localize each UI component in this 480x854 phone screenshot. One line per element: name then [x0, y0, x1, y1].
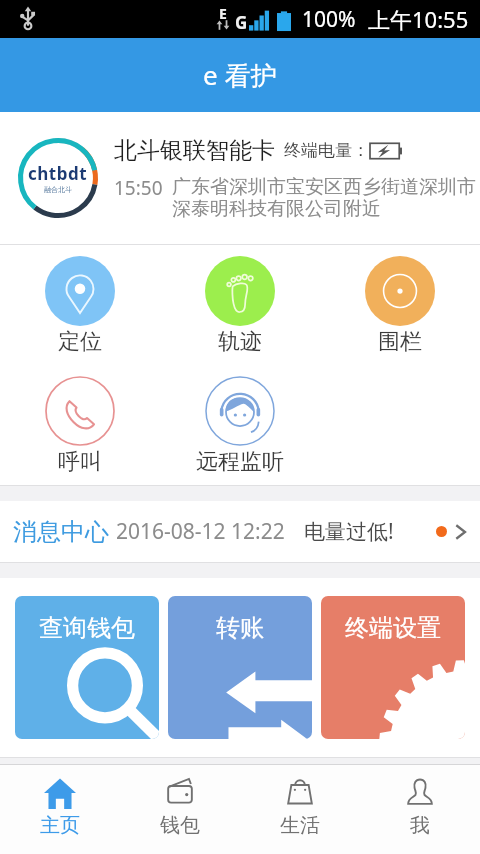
other: USB connected: [20, 6, 36, 30]
other: Open messages: [453, 520, 468, 544]
button[interactable]: 我: [360, 765, 480, 854]
staticText: 消息中心: [13, 517, 109, 547]
staticText: 钱包: [160, 813, 200, 838]
staticText: E: [219, 4, 227, 23]
button[interactable]: 转账: [168, 596, 312, 739]
button[interactable]: 钱包: [120, 765, 240, 854]
staticText: 100%: [302, 5, 356, 34]
staticText: 15:50: [114, 175, 163, 201]
staticText: 电量过低!: [304, 517, 394, 546]
staticText: 我: [410, 813, 430, 838]
staticText: 远程监听: [196, 448, 284, 476]
button[interactable]: 围栏: [320, 245, 480, 365]
staticText: 终端电量：: [284, 140, 369, 161]
staticText: 上午10:55: [368, 4, 469, 34]
button[interactable]: 消息中心: [0, 501, 480, 562]
button[interactable]: 主页: [0, 765, 120, 854]
staticText: 围栏: [378, 328, 422, 356]
button[interactable]: chtbdt: [0, 112, 480, 244]
staticText: chtbdt: [28, 162, 88, 185]
button[interactable]: 远程监听: [160, 365, 320, 485]
button[interactable]: 轨迹: [160, 245, 320, 365]
staticText: 融合北斗: [44, 185, 72, 194]
staticText: 转账: [216, 613, 264, 643]
button[interactable]: 终端设置: [321, 596, 465, 739]
staticText: 主页: [40, 813, 80, 838]
button[interactable]: 呼叫: [0, 365, 160, 485]
staticText: e 看护: [203, 57, 277, 93]
staticText: 轨迹: [218, 328, 262, 356]
staticText: 呼叫: [58, 448, 102, 476]
staticText: 广东省深圳市宝安区西乡街道深圳市 深泰明科技有限公司附近: [172, 175, 476, 221]
staticText: 查询钱包: [39, 613, 135, 643]
button[interactable]: 生活: [240, 765, 360, 854]
staticText: 终端设置: [345, 613, 441, 643]
staticText: G: [235, 11, 248, 34]
staticText: 2016-08-12 12:22: [116, 517, 285, 546]
staticText: 定位: [58, 328, 102, 356]
button[interactable]: 查询钱包: [15, 596, 159, 739]
button[interactable]: 定位: [0, 245, 160, 365]
staticText: 北斗银联智能卡: [114, 136, 275, 165]
staticText: 生活: [280, 813, 320, 838]
